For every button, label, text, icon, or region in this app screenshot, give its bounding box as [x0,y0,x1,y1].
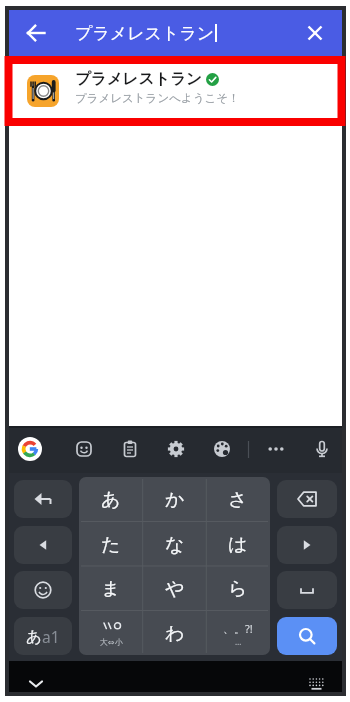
staticText: さ [228,488,248,512]
button[interactable] [164,437,188,461]
button[interactable] [24,672,48,696]
staticText: プラメレストラン [75,23,215,44]
staticText: a1 [42,626,60,647]
button[interactable] [264,437,288,461]
button[interactable]: プラメレストラン [9,56,342,126]
button[interactable] [18,437,42,461]
button[interactable]: は [206,522,270,567]
button[interactable]: や [143,566,207,611]
staticText: ま [101,577,121,601]
button[interactable] [14,480,72,518]
staticText: … [235,636,242,647]
staticText: な [165,533,185,557]
button[interactable] [14,571,72,609]
button[interactable]: ら [206,566,270,611]
button[interactable]: あ [14,617,72,655]
button[interactable]: あ [79,477,143,522]
staticText: 、。?! [223,621,253,636]
staticText: や [165,577,185,601]
button[interactable] [72,437,96,461]
button[interactable]: か [143,477,207,522]
staticText: プラメレストラン [75,69,202,89]
staticText: 大⇔小 [100,637,123,647]
button[interactable] [277,571,337,609]
staticText: プラメレストランへようこそ！ [75,91,240,105]
button[interactable] [305,672,329,696]
button[interactable] [277,480,337,518]
button[interactable] [118,437,142,461]
button[interactable]: な [143,522,207,567]
button[interactable] [24,21,48,45]
staticText: は [228,533,248,557]
button[interactable]: ま [79,566,143,611]
staticText: か [165,488,185,512]
staticText: た [101,533,121,557]
staticText: あ [101,488,121,512]
button[interactable] [14,526,72,564]
button[interactable] [310,437,334,461]
staticText: わ [165,622,185,646]
button[interactable] [303,21,327,45]
staticText: ら [228,577,248,601]
button[interactable] [277,526,337,564]
staticText: あ [26,627,42,647]
button[interactable]: 大⇔小 [79,611,143,655]
button[interactable] [277,617,337,655]
button[interactable]: わ [143,611,207,655]
button[interactable]: た [79,522,143,567]
button[interactable] [210,437,234,461]
button[interactable]: 、。?! [206,611,270,655]
button[interactable]: さ [206,477,270,522]
